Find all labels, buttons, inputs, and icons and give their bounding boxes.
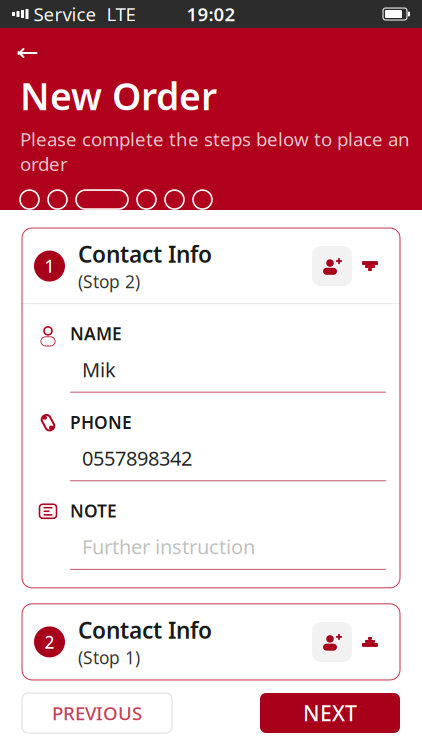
staticText: Please complete the steps below to place… xyxy=(20,126,410,176)
staticText: NEXT xyxy=(303,699,357,727)
staticText: Contact Info xyxy=(78,239,212,269)
button[interactable]: Add contact xyxy=(312,246,352,286)
button[interactable]: 2 xyxy=(22,604,400,680)
button[interactable]: Collapse section xyxy=(352,246,388,286)
staticText: (Stop 2) xyxy=(78,270,140,293)
staticText: NOTE xyxy=(70,499,117,522)
staticText: 2 xyxy=(44,630,54,653)
staticText: PREVIOUS xyxy=(52,701,142,725)
button[interactable]: NEXT xyxy=(260,693,400,733)
staticText: Mik xyxy=(82,356,116,383)
staticText: Further instruction xyxy=(82,533,255,560)
staticText: LTE xyxy=(106,2,135,26)
staticText: PHONE xyxy=(70,411,132,434)
staticText: 19:02 xyxy=(186,2,235,26)
button[interactable]: Back xyxy=(8,36,48,70)
staticText: NAME xyxy=(70,322,122,345)
staticText: Contact Info xyxy=(78,615,212,645)
button[interactable]: PREVIOUS xyxy=(22,693,172,733)
staticText: New Order xyxy=(20,71,217,120)
staticText: Service xyxy=(33,2,96,26)
staticText: 1 xyxy=(44,255,54,278)
button[interactable]: Add contact xyxy=(312,622,352,662)
button[interactable]: Expand section xyxy=(352,622,388,662)
staticText: 0557898342 xyxy=(82,445,192,471)
staticText: (Stop 1) xyxy=(78,646,140,669)
